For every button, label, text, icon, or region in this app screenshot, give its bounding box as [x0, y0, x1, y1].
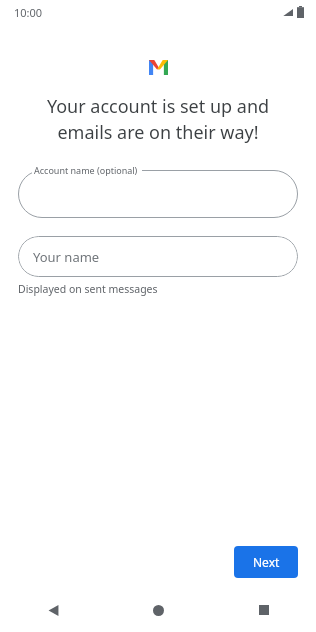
button[interactable]: Back — [0, 588, 106, 632]
staticText: Your account is set up and emails are on… — [16, 94, 300, 144]
button[interactable]: Your name — [18, 236, 298, 277]
staticText: 10:00 — [14, 5, 43, 20]
button[interactable]: Account name (optional) — [18, 170, 298, 218]
button[interactable]: Home — [106, 588, 211, 632]
staticText: Your name — [33, 248, 100, 266]
button[interactable]: Recent apps — [211, 588, 316, 632]
button[interactable]: Next — [234, 546, 298, 578]
staticText: Displayed on sent messages — [18, 282, 158, 296]
staticText: Next — [253, 554, 280, 570]
staticText: Account name (optional) — [34, 164, 138, 176]
